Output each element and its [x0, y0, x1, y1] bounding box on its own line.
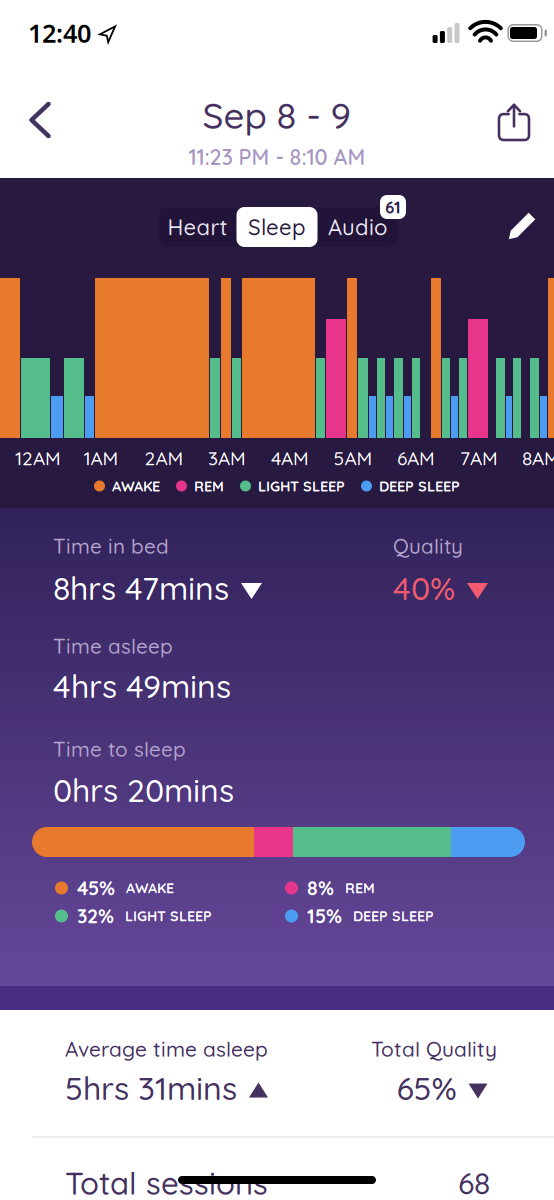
staticText: Sep 8 - 9	[202, 92, 351, 138]
staticText: AWAKE	[112, 477, 160, 495]
staticText: 40%	[393, 568, 455, 608]
button[interactable]: Sleep	[236, 207, 317, 247]
staticText: 4AM	[271, 446, 309, 470]
staticText: Heart	[167, 213, 227, 241]
staticText: DEEP SLEEP	[379, 477, 460, 495]
button[interactable]: Back	[19, 92, 60, 148]
staticText: 65%	[396, 1068, 456, 1108]
staticText: 61	[385, 196, 401, 218]
staticText: 8AM	[522, 446, 554, 470]
staticText: 68	[458, 1164, 490, 1200]
staticText: 32%	[77, 904, 114, 928]
staticText: 12AM	[15, 446, 61, 470]
button[interactable]: 40%	[393, 568, 488, 608]
staticText: 0hrs 20mins	[53, 770, 234, 810]
button[interactable]: Share	[489, 94, 539, 150]
staticText: 11:23 PM - 8:10 AM	[188, 144, 365, 170]
staticText: Sleep	[248, 213, 306, 241]
staticText: 1AM	[83, 446, 118, 470]
staticText: 8%	[307, 876, 334, 900]
staticText: 2AM	[144, 446, 183, 470]
staticText: 15%	[307, 904, 342, 928]
staticText: Audio	[328, 213, 387, 241]
staticText: Time in bed	[53, 533, 169, 559]
staticText: 4hrs 49mins	[53, 666, 231, 706]
button[interactable]: Edit	[501, 203, 545, 247]
staticText: 5hrs 31mins	[65, 1068, 237, 1108]
button[interactable]: Audio	[317, 207, 397, 247]
staticText: Average time asleep	[65, 1036, 268, 1062]
staticText: 3AM	[208, 446, 246, 470]
staticText: DEEP SLEEP	[353, 907, 434, 925]
staticText: REM	[345, 879, 375, 897]
staticText: AWAKE	[126, 879, 174, 897]
staticText: Total sessions	[65, 1164, 268, 1200]
staticText: 8hrs 47mins	[53, 568, 229, 608]
staticText: Time asleep	[53, 633, 173, 659]
staticText: Quality	[393, 533, 463, 559]
staticText: 5AM	[333, 446, 372, 470]
staticText: Total Quality	[371, 1036, 497, 1062]
staticText: LIGHT SLEEP	[258, 477, 345, 495]
staticText: LIGHT SLEEP	[125, 907, 212, 925]
button[interactable]: 8hrs 47mins	[53, 568, 262, 608]
button[interactable]: Heart	[158, 207, 236, 247]
staticText: 45%	[77, 876, 115, 900]
staticText: REM	[194, 477, 224, 495]
staticText: 6AM	[397, 446, 435, 470]
staticText: 12:40	[28, 16, 91, 50]
staticText: Time to sleep	[53, 736, 186, 762]
staticText: 7AM	[460, 446, 498, 470]
